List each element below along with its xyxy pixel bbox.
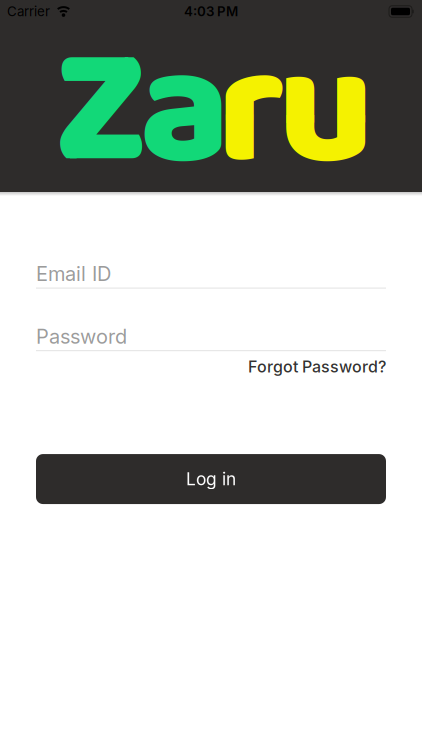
button[interactable]: Email ID	[36, 262, 386, 289]
button[interactable]: Forgot Password?	[248, 357, 386, 376]
staticText: Carrier	[7, 4, 50, 19]
button[interactable]: Log in	[36, 454, 386, 504]
button[interactable]: Password	[36, 325, 386, 351]
staticText: Password	[36, 325, 127, 348]
staticText: 4:03 PM	[184, 4, 238, 19]
staticText: Email ID	[36, 262, 111, 286]
staticText: Za	[54, 0, 230, 245]
staticText: Log in	[186, 469, 236, 489]
staticText: ru	[217, 0, 373, 245]
staticText: Forgot Password?	[248, 357, 386, 376]
